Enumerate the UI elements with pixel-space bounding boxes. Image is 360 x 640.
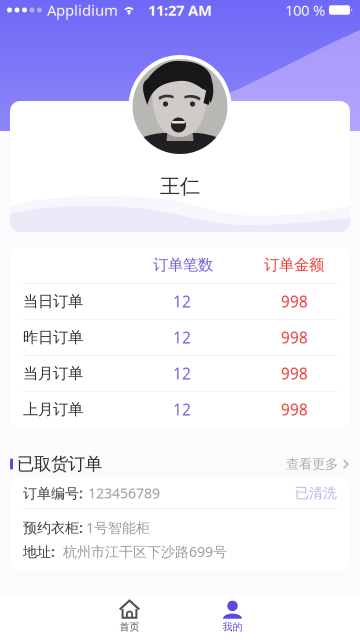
button[interactable]: 首页	[78, 596, 181, 640]
staticText: 998	[281, 291, 308, 312]
staticText: 已清洗	[295, 484, 337, 502]
staticText: 998	[281, 327, 308, 348]
staticText: 998	[281, 399, 308, 420]
staticText: 首页	[119, 621, 139, 633]
staticText: 998	[281, 363, 308, 384]
staticText: 12	[173, 399, 191, 420]
staticText: 昨日订单	[23, 328, 83, 347]
staticText: 订单笔数	[153, 255, 213, 275]
staticText: 王仁	[160, 174, 200, 199]
button[interactable]: 我的	[181, 596, 284, 640]
staticText: 预约衣柜:	[23, 518, 83, 537]
button[interactable]: 查看更多	[286, 450, 350, 478]
staticText: Applidium	[47, 0, 118, 20]
staticText: 订单编号:	[23, 483, 83, 503]
staticText: 123456789	[88, 483, 160, 503]
staticText: 当月订单	[23, 364, 83, 383]
staticText: 12	[173, 327, 191, 348]
staticText: 地址:	[23, 542, 55, 561]
staticText: 1号智能柜	[86, 518, 150, 537]
staticText: 上月订单	[23, 400, 83, 419]
staticText: 杭州市江干区下沙路699号	[63, 542, 227, 561]
staticText: 100 %	[285, 0, 325, 20]
staticText: 已取货订单	[17, 453, 102, 475]
staticText: 订单金额	[264, 255, 324, 275]
staticText: 12	[173, 363, 191, 384]
staticText: 查看更多	[286, 456, 338, 472]
staticText: 当日订单	[23, 292, 83, 311]
staticText: 我的	[222, 621, 242, 633]
staticText: 12	[173, 291, 191, 312]
staticText: 11:27 AM	[148, 0, 212, 20]
